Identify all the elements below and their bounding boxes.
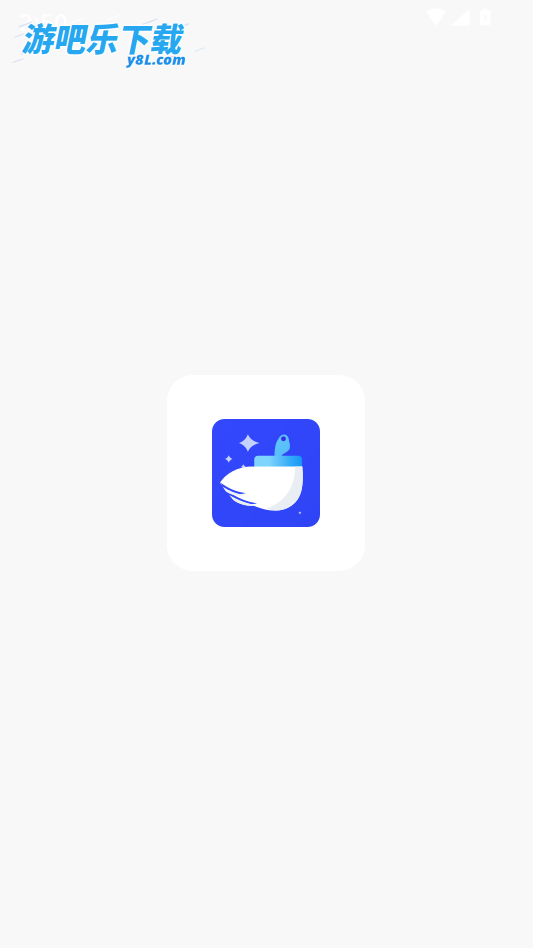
button[interactable]: Open Cleaner <box>167 375 365 571</box>
staticText: y8L.com <box>128 50 187 70</box>
staticText: 游吧乐下载 <box>22 14 182 60</box>
staticText: 游吧乐下载 <box>21 13 181 59</box>
staticText: 游吧乐下载 <box>21 15 181 62</box>
staticText: 游吧乐下载 <box>20 14 180 60</box>
staticText: 2:50 <box>19 6 68 38</box>
staticText: 游吧乐下载 <box>21 14 181 60</box>
staticText: y8L.com <box>127 49 186 69</box>
